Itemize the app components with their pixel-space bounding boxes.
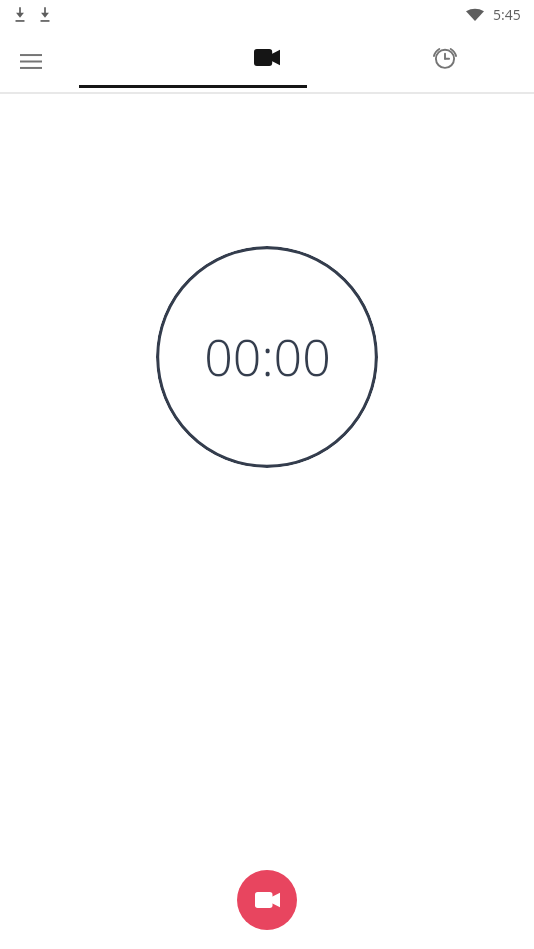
staticText: 00:00 (204, 323, 331, 391)
button[interactable]: Menu (0, 28, 178, 94)
staticText: 5:45 (493, 5, 521, 24)
button[interactable]: Scheduled tab (356, 28, 534, 94)
button[interactable]: Recording timer 00:00 (156, 246, 378, 468)
button[interactable]: Recorder tab (178, 28, 356, 94)
button[interactable]: Start recording (237, 870, 297, 930)
